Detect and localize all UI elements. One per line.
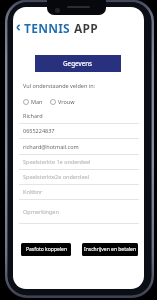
staticText: 0655224837 — [23, 127, 55, 134]
staticText: Knltbnr — [23, 188, 43, 195]
staticText: Man — [31, 98, 43, 105]
staticText: Gegevens — [63, 59, 93, 68]
button[interactable]: Speelsterkte 1e onderdeel — [19, 154, 139, 169]
button[interactable]: Back — [14, 20, 98, 34]
staticText: Speelsterkte 1e onderdeel — [23, 158, 91, 165]
staticText: Opmerkingen — [23, 208, 59, 215]
staticText: APP — [74, 20, 98, 34]
button[interactable]: Vrouw — [50, 98, 75, 105]
other: Back — [14, 23, 24, 32]
button[interactable]: Inschrijven en betalen — [82, 243, 138, 256]
staticText: Pasfoto koppelen — [26, 246, 67, 253]
button[interactable]: Richard — [19, 108, 139, 123]
staticText: Speelsterkte2e onderdeel — [23, 173, 90, 180]
button[interactable]: 0655224837 — [19, 123, 139, 138]
button[interactable]: richard@hotmail.com — [19, 139, 139, 154]
staticText: Inschrijven en betalen — [84, 246, 136, 253]
staticText: TENNIS — [24, 20, 74, 34]
button[interactable]: Gegevens — [35, 55, 121, 72]
button[interactable]: Man — [23, 98, 43, 105]
staticText: Vul onderstaande velden in: — [23, 82, 96, 89]
staticText: richard@hotmail.com — [23, 143, 79, 150]
button[interactable]: Pasfoto koppelen — [21, 243, 71, 256]
button[interactable]: Knltbnr — [19, 184, 139, 199]
staticText: Richard — [23, 112, 43, 119]
staticText: Vrouw — [58, 98, 75, 105]
button[interactable] — [19, 200, 139, 223]
button[interactable]: Speelsterkte2e onderdeel — [19, 169, 139, 184]
